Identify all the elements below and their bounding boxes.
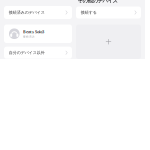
staticText: Beats Solo3 [23, 29, 44, 34]
staticText: その他のデバイス [77, 0, 117, 4]
staticText: 接続済み [23, 35, 35, 38]
button[interactable]: 自分のデバイス以外 [4, 47, 72, 59]
staticText: 接続済みのデバイス [9, 10, 45, 15]
staticText: 接続する [81, 10, 97, 15]
button[interactable]: Beats Solo3 [4, 24, 72, 43]
button[interactable]: 接続する [76, 6, 141, 18]
staticText: 自分のデバイス以外 [9, 50, 45, 55]
button[interactable]: 接続済みのデバイス [4, 6, 72, 19]
button[interactable]: デバイスを追加 [76, 24, 141, 59]
